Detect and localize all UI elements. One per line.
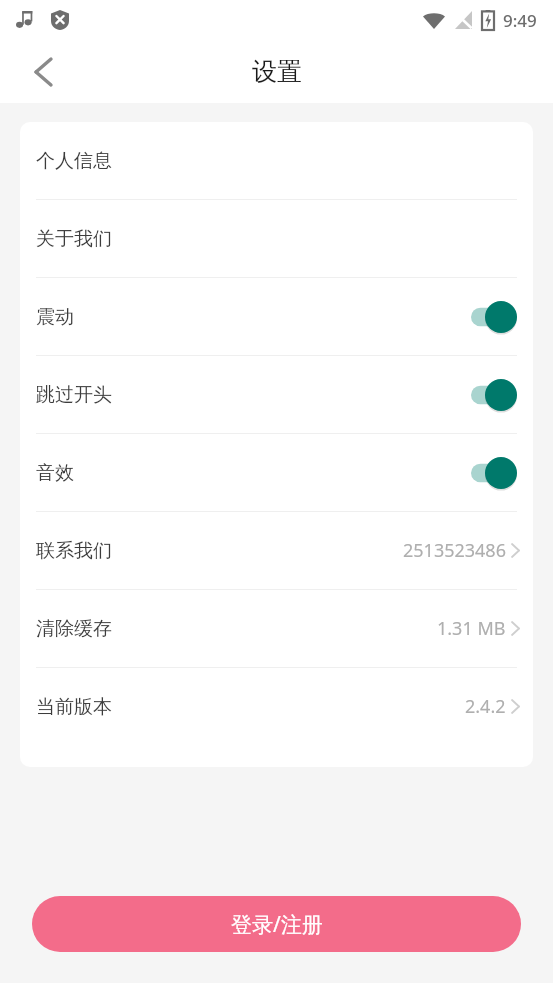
staticText: 1.31 MB: [437, 616, 506, 641]
staticText: 个人信息: [36, 149, 112, 173]
button[interactable]: Back: [20, 49, 66, 95]
staticText: 跳过开头: [36, 383, 112, 407]
staticText: 登录/注册: [231, 910, 323, 939]
button[interactable]: 个人信息: [20, 122, 533, 199]
button[interactable]: 联系我们: [20, 512, 533, 589]
button[interactable]: 震动: [20, 278, 533, 355]
button[interactable]: Toggle: [471, 457, 517, 489]
button[interactable]: 清除缓存: [20, 590, 533, 667]
staticText: 清除缓存: [36, 617, 112, 641]
button[interactable]: 音效: [20, 434, 533, 511]
button[interactable]: 关于我们: [20, 200, 533, 277]
button[interactable]: Toggle: [471, 301, 517, 333]
staticText: 震动: [36, 305, 74, 329]
staticText: 2.4.2: [465, 694, 506, 719]
staticText: 设置: [252, 56, 302, 87]
button[interactable]: 跳过开头: [20, 356, 533, 433]
staticText: 音效: [36, 461, 74, 485]
staticText: 当前版本: [36, 695, 112, 719]
button[interactable]: 登录/注册: [32, 896, 521, 952]
button[interactable]: 当前版本: [20, 668, 533, 745]
staticText: 关于我们: [36, 227, 112, 251]
staticText: 2513523486: [403, 538, 506, 563]
button[interactable]: Toggle: [471, 379, 517, 411]
staticText: 9:49: [503, 9, 537, 32]
staticText: 联系我们: [36, 539, 112, 563]
